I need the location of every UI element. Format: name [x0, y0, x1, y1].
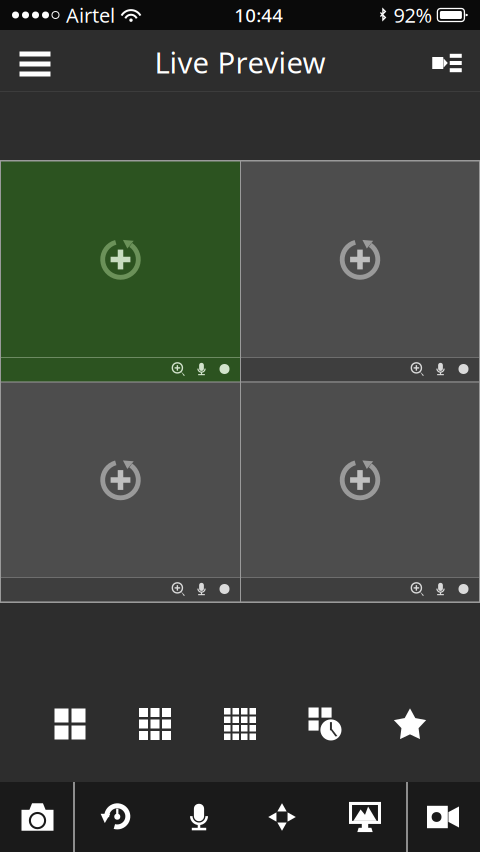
staticText: Live Preview [154, 42, 325, 81]
button[interactable]: Camera list [414, 30, 480, 92]
staticText: Airtel [66, 2, 115, 28]
staticText: 92% [393, 2, 432, 28]
button[interactable]: Record [213, 357, 236, 381]
button[interactable]: Audio [190, 357, 213, 381]
button[interactable]: Audio [429, 577, 452, 601]
button[interactable]: Digital zoom [406, 357, 429, 381]
button[interactable]: Digital zoom [167, 357, 190, 381]
button[interactable]: 4 by 4 layout [197, 699, 282, 749]
button[interactable]: Record video [407, 782, 478, 852]
button[interactable]: 2 by 2 layout [27, 699, 112, 749]
button[interactable]: 3 by 3 layout [112, 699, 197, 749]
button[interactable]: Menu [0, 30, 70, 92]
button[interactable]: Digital zoom [406, 577, 429, 601]
button[interactable]: Playback history [74, 782, 157, 852]
button[interactable]: Digital zoom [167, 577, 190, 601]
staticText: 10:44 [234, 3, 283, 27]
button[interactable]: Record [452, 577, 475, 601]
button[interactable]: Audio [190, 577, 213, 601]
button[interactable]: Display [323, 782, 406, 852]
button[interactable]: Record [213, 577, 236, 601]
button[interactable]: Audio [429, 357, 452, 381]
button[interactable]: Favorites [367, 699, 452, 749]
button[interactable]: Talk [157, 782, 240, 852]
button[interactable]: Record [452, 357, 475, 381]
button[interactable]: Pan and tilt [240, 782, 323, 852]
button[interactable]: Snapshot [1, 782, 73, 852]
button[interactable]: Playback [282, 699, 367, 749]
